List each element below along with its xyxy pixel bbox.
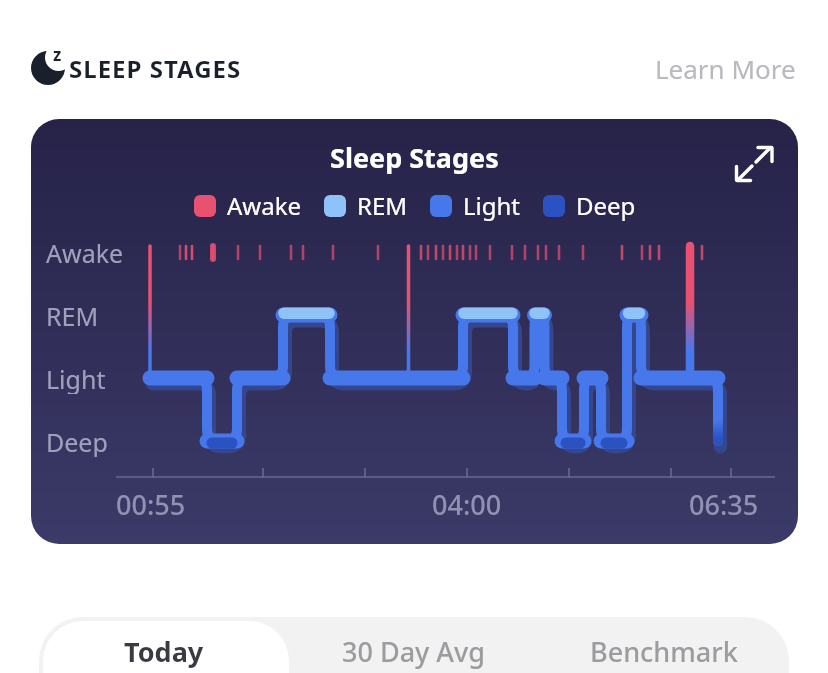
staticText: Learn More [655, 51, 796, 86]
button[interactable]: 30 Day Avg [289, 617, 539, 673]
staticText: REM [357, 189, 408, 222]
staticText: SLEEP STAGES [69, 52, 242, 85]
button[interactable]: Today [39, 617, 289, 673]
staticText: Today [124, 633, 204, 670]
staticText: Light [463, 189, 521, 222]
staticText: 06:35 [689, 486, 759, 522]
staticText: Sleep Stages [330, 139, 499, 175]
button[interactable]: Benchmark [539, 617, 789, 673]
staticText: 30 Day Avg [342, 633, 486, 670]
button[interactable] [43, 621, 289, 673]
button[interactable] [730, 140, 778, 188]
staticText: z [53, 43, 62, 65]
button[interactable]: Learn More [556, 40, 796, 96]
staticText: Benchmark [590, 633, 738, 670]
button[interactable]: SLEEP STAGES [31, 40, 291, 96]
staticText: REM [46, 299, 99, 331]
staticText: Awake [46, 236, 124, 268]
staticText: 04:00 [432, 486, 502, 522]
staticText: Light [46, 362, 106, 394]
staticText: Awake [227, 189, 302, 222]
staticText: Deep [576, 189, 636, 222]
staticText: Deep [46, 425, 108, 457]
staticText: 00:55 [116, 486, 186, 522]
